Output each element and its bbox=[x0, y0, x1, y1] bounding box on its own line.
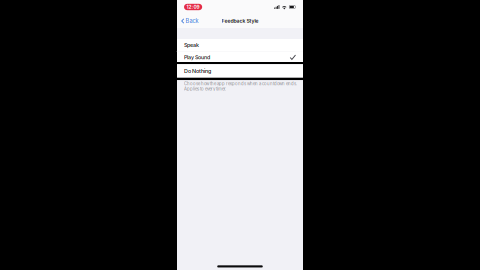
button[interactable]: Speak bbox=[177, 39, 303, 51]
staticText: Speak bbox=[184, 42, 199, 48]
staticText: Play Sound bbox=[184, 54, 210, 60]
button[interactable]: Play Sound bbox=[177, 51, 303, 62]
staticText: Feedback Style bbox=[221, 18, 258, 24]
staticText: Choose how the app responds when a count… bbox=[184, 81, 297, 86]
button[interactable]: Do Nothing bbox=[177, 64, 303, 78]
staticText: Back bbox=[185, 18, 198, 24]
staticText: Do Nothing bbox=[184, 68, 211, 74]
staticText: Applies to every timer. bbox=[184, 86, 226, 92]
staticText: 12:09 bbox=[187, 4, 200, 10]
button[interactable]: Back bbox=[177, 15, 202, 27]
